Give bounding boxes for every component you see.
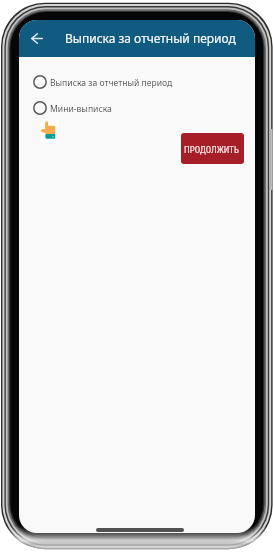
staticText: Мини-выписка — [50, 103, 112, 115]
staticText: Выписка за отчетный период — [65, 30, 236, 46]
button[interactable]: Мини-выписка — [19, 97, 255, 119]
button[interactable]: Выписка за отчетный период — [19, 71, 255, 93]
staticText: Выписка за отчетный период — [50, 77, 173, 89]
button[interactable]: Назад — [25, 26, 49, 51]
staticText: ПРОДОЛЖИТЬ — [184, 145, 239, 156]
button[interactable]: ПРОДОЛЖИТЬ — [181, 133, 244, 164]
